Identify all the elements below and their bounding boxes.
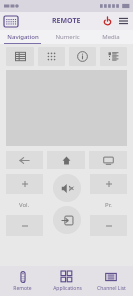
staticText: Media	[102, 33, 120, 41]
button[interactable]: Remote	[0, 266, 45, 296]
staticText: Pr.	[105, 201, 112, 209]
staticText: Remote	[13, 285, 32, 292]
button[interactable]: Channel List	[89, 266, 133, 296]
staticText: Navigation	[7, 33, 39, 41]
button[interactable]: Menu	[116, 14, 130, 28]
button[interactable]: Source	[53, 206, 81, 234]
button[interactable]: List	[100, 47, 127, 66]
staticText: Vol.	[19, 201, 30, 209]
staticText: Channel List	[97, 285, 126, 292]
staticText: Applications	[53, 285, 82, 292]
button[interactable]: Power	[100, 14, 114, 28]
staticText: Numeric	[55, 33, 80, 41]
button[interactable]: Numeric	[45, 30, 89, 44]
button[interactable]: Keyboard	[4, 16, 18, 27]
button[interactable]: Pr. up	[90, 174, 127, 194]
button[interactable]: Media	[89, 30, 133, 44]
button[interactable]: Info	[69, 47, 96, 66]
button[interactable]: Vol. down	[6, 215, 43, 236]
button[interactable]: Navigation	[0, 30, 45, 44]
button[interactable]: Guide	[6, 47, 34, 66]
button[interactable]: Mute	[53, 174, 81, 202]
button[interactable]: Applications	[45, 266, 89, 296]
staticText: REMOTE	[52, 16, 81, 26]
button[interactable]: Back	[6, 151, 43, 169]
button[interactable]: TV	[89, 151, 127, 169]
button[interactable]: Home	[47, 151, 85, 169]
button[interactable]: Keypad	[38, 47, 65, 66]
button[interactable]: Vol. up	[6, 174, 43, 194]
button[interactable]: Pr. down	[90, 215, 127, 236]
